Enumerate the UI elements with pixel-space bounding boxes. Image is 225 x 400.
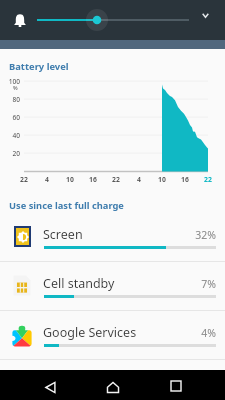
- staticText: 60: [3, 113, 20, 122]
- staticText: Cell standby: [43, 275, 115, 292]
- button[interactable]: Google Services: [0, 311, 225, 359]
- staticText: 40: [3, 131, 20, 140]
- button[interactable]: Notifications: [9, 9, 31, 31]
- staticText: Use since last full charge: [9, 199, 124, 212]
- staticText: Battery level: [9, 60, 69, 73]
- staticText: 80: [3, 95, 20, 104]
- staticText: 22: [199, 175, 217, 184]
- staticText: 7%: [176, 277, 216, 291]
- button[interactable]: Brightness: [37, 9, 189, 31]
- staticText: 4: [130, 175, 148, 184]
- button[interactable]: Back: [37, 374, 63, 400]
- staticText: Screen: [43, 226, 83, 243]
- staticText: %: [13, 84, 18, 91]
- staticText: Google Services: [43, 324, 137, 341]
- staticText: 4%: [176, 326, 216, 340]
- button[interactable]: Expand quick settings: [197, 7, 213, 23]
- button[interactable]: Cell standby: [0, 262, 225, 310]
- staticText: 10: [153, 175, 171, 184]
- staticText: 20: [3, 149, 20, 158]
- button[interactable]: Recent apps: [163, 373, 189, 399]
- staticText: 16: [176, 175, 194, 184]
- staticText: 22: [107, 175, 125, 184]
- staticText: 4: [38, 175, 56, 184]
- button[interactable]: Screen: [0, 213, 225, 261]
- staticText: 22: [15, 175, 33, 184]
- staticText: 100: [3, 77, 20, 86]
- button[interactable]: Home: [100, 374, 126, 400]
- staticText: 32%: [176, 228, 216, 242]
- staticText: 10: [61, 175, 79, 184]
- staticText: 16: [84, 175, 102, 184]
